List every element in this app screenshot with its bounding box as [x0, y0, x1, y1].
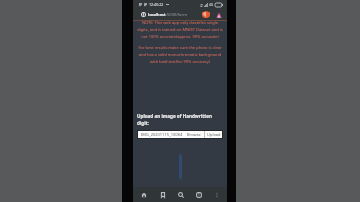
staticText: 12:40:22: [149, 2, 164, 7]
other: Brave menu: [216, 12, 222, 18]
staticText: Browse: [187, 132, 201, 137]
staticText: Upload: [207, 132, 221, 137]
button[interactable]: More options: [208, 187, 226, 202]
button[interactable]: Search: [172, 187, 190, 202]
other: Shields: [202, 11, 210, 18]
button[interactable]: Bookmarks: [153, 187, 172, 202]
button[interactable]: Home: [134, 187, 153, 202]
button[interactable]: Upload: [205, 131, 222, 138]
staticText: 1: [198, 193, 200, 197]
staticText: NOTE: This web app only classifies singl…: [137, 20, 223, 40]
staticText: 4G: [209, 3, 214, 7]
staticText: :5000/form: [166, 12, 187, 17]
button[interactable]: Tabs: [190, 187, 208, 202]
staticText: Upload an image of Handwritten digit:: [137, 113, 220, 126]
staticText: localhost: [148, 12, 166, 17]
staticText: IMG_20201115_10084: [141, 132, 183, 137]
button[interactable]: IMG_20201115_10084: [138, 131, 204, 138]
staticText: For best results make sure the photo is …: [137, 45, 223, 65]
